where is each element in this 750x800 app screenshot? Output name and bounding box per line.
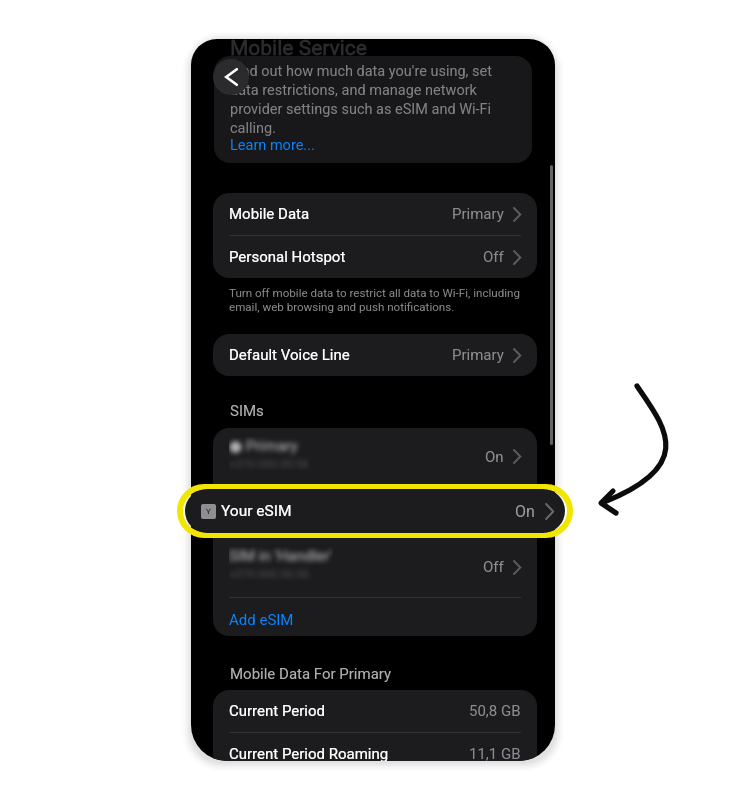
staticText: Primary [452,205,504,223]
button[interactable]: Y [185,489,565,533]
staticText: Current Period [229,702,325,720]
staticText: Default Voice Line [229,346,350,364]
staticText: SIM in 'Handler' [229,547,333,565]
staticText: 11,1 GB [469,745,521,761]
button[interactable]: SIM in 'Handler' [213,537,537,597]
staticText: Turn off mobile data to restrict all dat… [229,286,520,300]
staticText: Mobile Data [229,205,310,223]
button[interactable]: Learn more... [230,137,315,154]
button[interactable]: ● Primary [213,428,537,485]
staticText: Off [483,558,504,576]
staticText: ● Primary [229,437,298,455]
button[interactable]: Current Period [213,690,537,732]
staticText: On [515,502,535,521]
staticText: Off [483,248,504,266]
staticText: Find out how much data you're using, set… [230,63,492,137]
staticText: Mobile Data For Primary [230,665,392,683]
staticText: Primary [452,346,504,364]
staticText: +370 000 00 00 [229,567,309,580]
staticText: 50,8 GB [469,702,521,720]
button[interactable]: Add eSIM [213,598,537,636]
button[interactable]: Default Voice Line [213,334,537,376]
staticText: Current Period Roaming [229,745,389,761]
staticText: On [485,448,504,466]
staticText: SIMs [230,402,264,420]
button[interactable]: Current Period Roaming [213,733,537,761]
staticText: Personal Hotspot [229,248,346,266]
staticText: Mobile Service [230,39,367,61]
staticText: Y [206,507,211,516]
button[interactable]: Personal Hotspot [213,236,537,278]
button[interactable]: Back [213,59,249,95]
staticText: Add eSIM [229,611,294,629]
staticText: email, web browsing and push notificatio… [229,300,455,314]
button[interactable]: Mobile Data [213,193,537,235]
staticText: Your eSIM [221,502,292,520]
staticText: +370 000 00 00 [229,457,309,470]
